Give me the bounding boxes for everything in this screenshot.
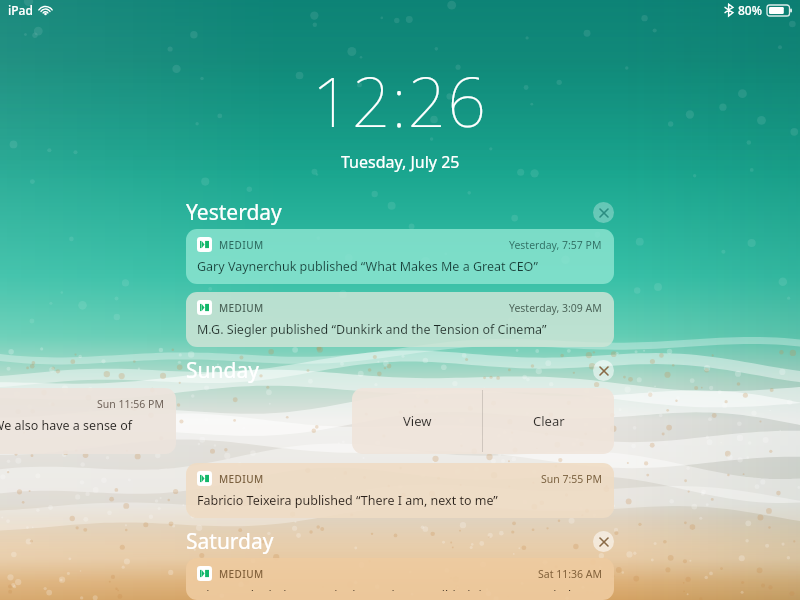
staticText: published “We have jerks. We also have a… xyxy=(0,417,133,434)
staticText: Yesterday xyxy=(186,198,282,227)
button[interactable]: Clear Sunday notifications xyxy=(593,360,614,381)
button[interactable]: Clear Yesterday notifications xyxy=(593,202,614,223)
staticText: MEDIUM xyxy=(219,238,264,252)
staticText: 80% xyxy=(738,2,762,18)
button[interactable]: View xyxy=(352,388,482,454)
staticText: 12:26 xyxy=(312,54,488,147)
staticText: Tuesday, July 25 xyxy=(341,151,460,173)
staticText: Yesterday, 7:57 PM xyxy=(509,238,602,252)
staticText: iPad xyxy=(8,2,33,18)
staticText: Gary Vaynerchuk published “What Makes Me… xyxy=(197,258,538,275)
staticText: Clear xyxy=(533,412,565,430)
staticText: Sun 7:55 PM xyxy=(541,472,602,486)
staticText: MEDIUM xyxy=(219,301,264,315)
staticText: Sunday xyxy=(186,356,259,385)
staticText: View xyxy=(403,412,432,430)
staticText: Fabricio Teixeira published “There I am,… xyxy=(197,492,498,509)
staticText: Yesterday, 3:09 AM xyxy=(509,301,602,315)
staticText: Sun 11:56 PM xyxy=(97,397,164,411)
button[interactable]: MEDIUM xyxy=(186,558,614,600)
button[interactable]: Clear xyxy=(483,388,614,454)
staticText: Saturday xyxy=(186,527,274,556)
button[interactable]: MEDIUM xyxy=(186,292,614,347)
button[interactable]: Clear Saturday notifications xyxy=(593,531,614,552)
button[interactable]: MEDIUM xyxy=(186,463,614,518)
button[interactable]: MEDIUM xyxy=(186,229,614,284)
staticText: MEDIUM xyxy=(219,567,264,581)
staticText: MEDIUM xyxy=(219,472,264,486)
staticText: M.G. Siegler published “Dunkirk and the … xyxy=(197,321,547,338)
staticText: Sat 11:36 AM xyxy=(538,567,602,581)
button[interactable]: Sun 11:56 PM xyxy=(0,388,176,454)
staticText: Dharmesh Shah, M.G. Siegler, and Sar Har… xyxy=(197,587,602,591)
